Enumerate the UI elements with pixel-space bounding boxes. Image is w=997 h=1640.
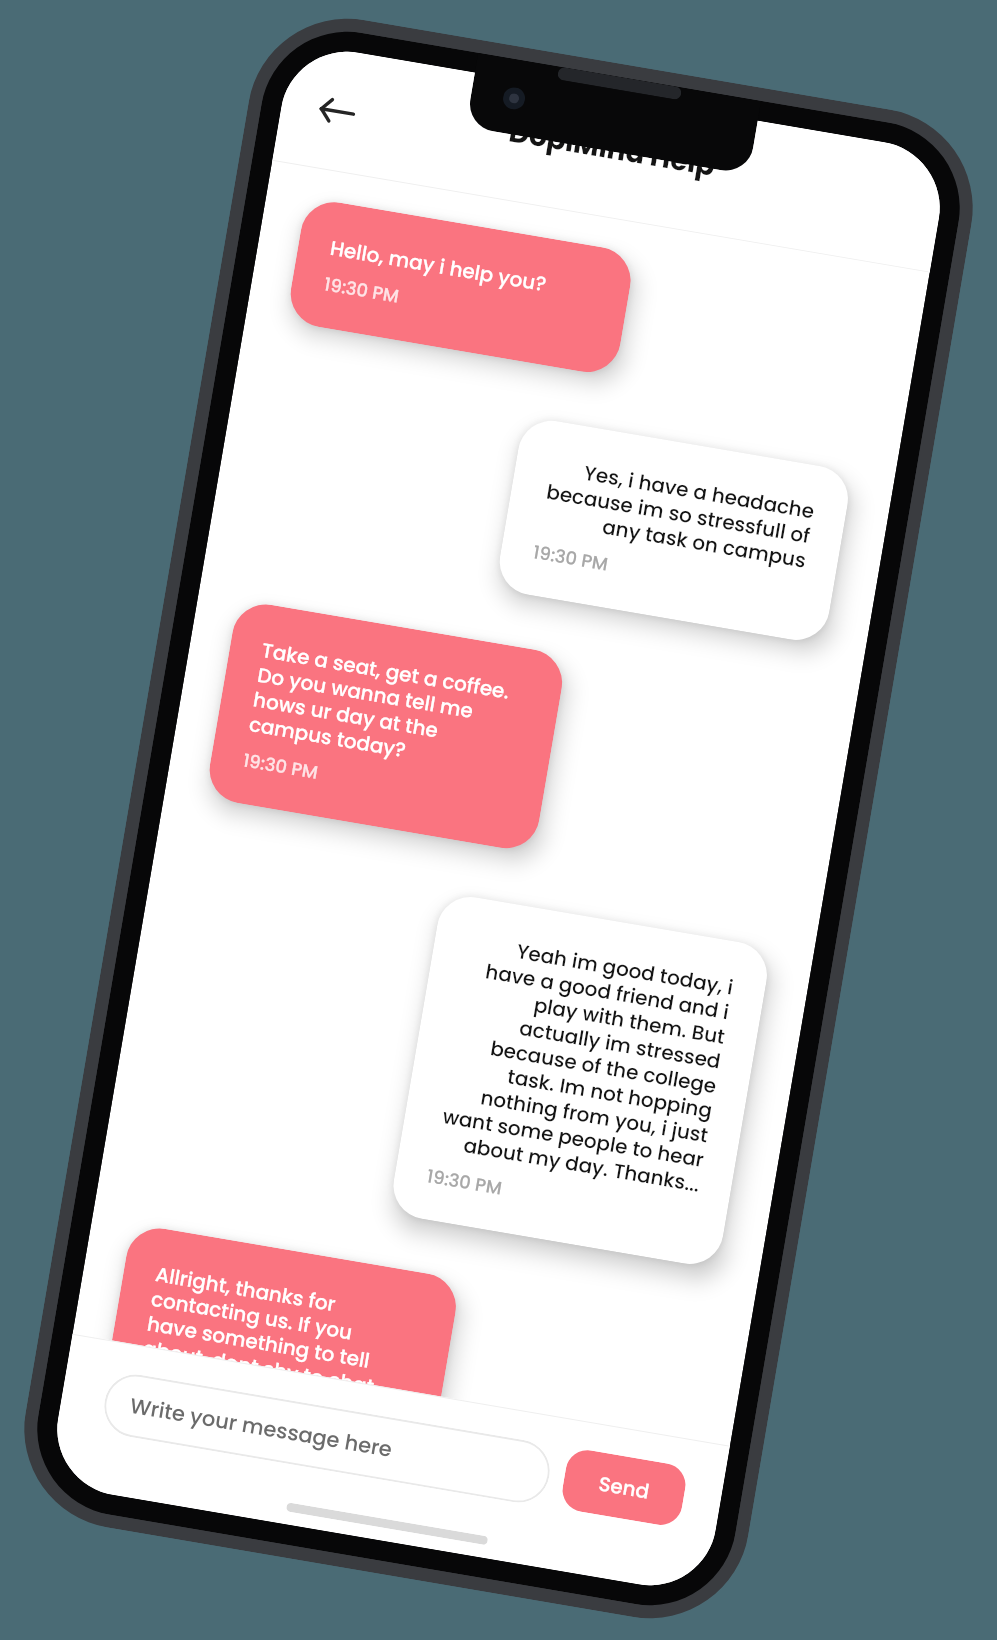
staticText: Hello, may i help you? <box>328 234 599 307</box>
staticText: Allright, thanks for contacting us. If y… <box>137 1260 424 1432</box>
staticText: Yes, i have a headache because im so str… <box>537 452 816 575</box>
button[interactable]: Allright, thanks for contacting us. If y… <box>94 1223 461 1502</box>
staticText: Yeah im good today, i have a good friend… <box>431 929 735 1199</box>
staticText: 19:30 PM <box>322 271 401 309</box>
button[interactable]: Yeah im good today, i have a good friend… <box>388 892 772 1269</box>
staticText: Send <box>596 1469 651 1506</box>
button[interactable]: Write your message here <box>99 1370 555 1507</box>
button[interactable]: Yes, i have a headache because im so str… <box>494 416 853 645</box>
button[interactable]: Send <box>559 1447 689 1528</box>
staticText: Write your message here <box>128 1391 395 1464</box>
staticText: 19:30 PM <box>531 539 610 577</box>
staticText: 19:30 PM <box>131 1396 210 1434</box>
staticText: 19:30 PM <box>241 747 320 785</box>
button[interactable]: Hello, may i help you? <box>285 197 636 377</box>
staticText: DopiMind Help <box>506 112 719 186</box>
button[interactable]: Take a seat, get a coffee. Do you wanna … <box>204 599 567 853</box>
staticText: Take a seat, get a coffee. Do you wanna … <box>247 636 530 783</box>
staticText: 19:30 PM <box>425 1163 504 1201</box>
button[interactable]: Back <box>311 84 364 137</box>
